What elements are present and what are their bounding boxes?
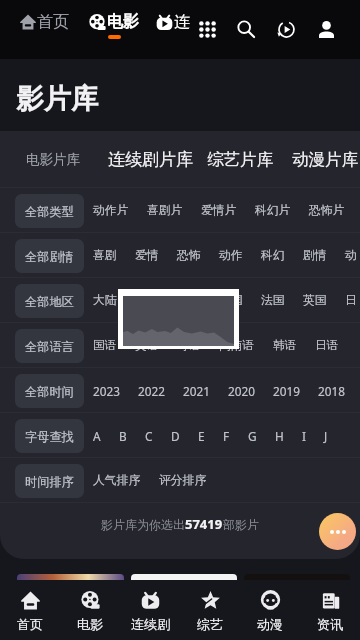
- button[interactable]: 全部语言: [15, 329, 84, 363]
- button[interactable]: 动作片: [84, 197, 138, 224]
- button[interactable]: A: [84, 422, 110, 450]
- button[interactable]: 英国: [294, 287, 336, 314]
- button[interactable]: 资讯: [300, 580, 360, 640]
- button[interactable]: 全部时间: [15, 374, 84, 408]
- button[interactable]: 全部类型: [15, 194, 84, 228]
- staticText: 字母查找: [25, 429, 74, 444]
- button[interactable]: 动漫: [240, 580, 300, 640]
- button[interactable]: 人气排序: [84, 467, 150, 494]
- staticText: 时间排序: [25, 474, 74, 489]
- button[interactable]: Profile: [310, 13, 342, 45]
- button[interactable]: 中国: [210, 287, 252, 314]
- staticText: 全部类型: [25, 204, 74, 219]
- button[interactable]: C: [136, 422, 162, 450]
- button[interactable]: 日本: [336, 287, 360, 314]
- button[interactable]: 电影: [60, 580, 120, 640]
- button[interactable]: 电影片库: [26, 151, 80, 168]
- button[interactable]: 国语: [84, 332, 126, 359]
- button[interactable]: 香港: [126, 287, 168, 314]
- button[interactable]: 全部剧情: [15, 239, 84, 273]
- button[interactable]: D: [162, 422, 189, 450]
- button[interactable]: J: [315, 422, 337, 450]
- staticText: 电影: [107, 12, 139, 32]
- button[interactable]: All categories: [191, 13, 223, 45]
- button[interactable]: 喜剧: [84, 242, 126, 269]
- button[interactable]: 字母查找: [15, 419, 84, 453]
- staticText: 全部时间: [25, 384, 74, 399]
- button[interactable]: H: [266, 422, 293, 450]
- staticText: 影片库为你选出: [101, 517, 185, 532]
- button[interactable]: 爱情片: [192, 197, 246, 224]
- button[interactable]: 英语: [126, 332, 168, 359]
- button[interactable]: 日语: [306, 332, 348, 359]
- button[interactable]: 2023: [84, 377, 129, 405]
- button[interactable]: 大陆: [84, 287, 126, 314]
- button[interactable]: 首页: [0, 580, 60, 640]
- button[interactable]: 2020: [219, 377, 264, 405]
- staticText: 部影片: [223, 517, 259, 532]
- button[interactable]: 粤语: [168, 332, 210, 359]
- button[interactable]: 2018: [309, 377, 354, 405]
- button[interactable]: 电影: [89, 12, 139, 39]
- button[interactable]: 法国: [252, 287, 294, 314]
- staticText: 首页: [37, 12, 69, 32]
- button[interactable]: 评分排序: [150, 467, 216, 494]
- staticText: 连续剧: [131, 616, 170, 632]
- staticText: 全部剧情: [25, 249, 74, 264]
- button[interactable]: 2021: [174, 377, 219, 405]
- button[interactable]: 连续剧片库: [108, 149, 193, 170]
- button[interactable]: 美国: [168, 287, 210, 314]
- staticText: 动漫: [257, 616, 283, 632]
- button[interactable]: 综艺片库: [207, 149, 273, 170]
- staticText: 综艺: [197, 616, 223, 632]
- button[interactable]: Search: [230, 13, 262, 45]
- button[interactable]: B: [110, 422, 136, 450]
- button[interactable]: 爱情: [126, 242, 168, 269]
- button[interactable]: 2019: [264, 377, 309, 405]
- button[interactable]: 科幻: [252, 242, 294, 269]
- button[interactable]: I: [293, 422, 315, 450]
- button[interactable]: 连续剧: [120, 580, 180, 640]
- button[interactable]: 科幻片: [246, 197, 300, 224]
- button[interactable]: 动画: [336, 242, 360, 269]
- button[interactable]: 2022: [129, 377, 174, 405]
- staticText: 资讯: [317, 616, 343, 632]
- button[interactable]: 综艺: [180, 580, 240, 640]
- button[interactable]: 动漫片库: [292, 149, 358, 170]
- button[interactable]: E: [189, 422, 214, 450]
- button[interactable]: G: [239, 422, 266, 450]
- button[interactable]: 动作: [210, 242, 252, 269]
- button[interactable]: 恐怖: [168, 242, 210, 269]
- button[interactable]: 恐怖片: [300, 197, 354, 224]
- staticText: 连: [174, 12, 190, 32]
- staticText: 首页: [17, 616, 43, 632]
- button[interactable]: 连: [156, 12, 190, 32]
- staticText: 全部语言: [25, 339, 74, 354]
- button[interactable]: 剧情: [294, 242, 336, 269]
- staticText: 全部地区: [25, 294, 74, 309]
- button[interactable]: More options: [319, 513, 356, 550]
- button[interactable]: 喜剧片: [138, 197, 192, 224]
- button[interactable]: F: [214, 422, 239, 450]
- button[interactable]: History: [270, 13, 302, 45]
- button[interactable]: 首页: [20, 12, 69, 32]
- staticText: 57419: [185, 515, 223, 533]
- staticText: 电影: [77, 616, 103, 632]
- button[interactable]: 韩语: [264, 332, 306, 359]
- button[interactable]: 时间排序: [15, 464, 84, 498]
- staticText: 影片库: [16, 82, 99, 117]
- button[interactable]: 闽南语: [210, 332, 264, 359]
- button[interactable]: 全部地区: [15, 284, 84, 318]
